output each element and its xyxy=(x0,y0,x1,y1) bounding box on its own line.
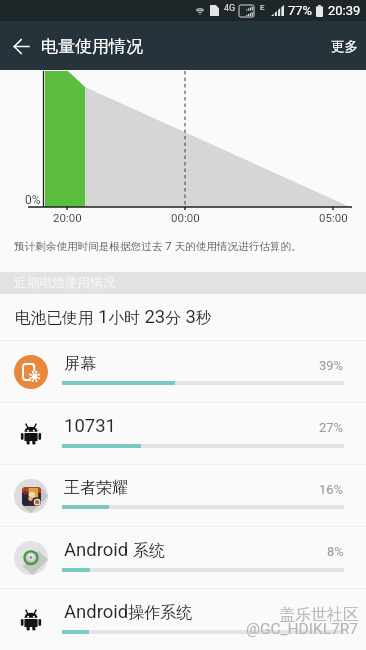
staticText: 4G xyxy=(224,3,236,14)
staticText: Android 系统 xyxy=(64,539,165,561)
staticText: 屏幕 xyxy=(64,354,96,374)
staticText: 16% xyxy=(319,482,344,497)
staticText: 电池已使用 1小时 23分 3秒 xyxy=(15,306,212,328)
button[interactable]: 更多 xyxy=(315,25,366,66)
button[interactable]: 10731 xyxy=(0,403,366,464)
staticText: 39% xyxy=(319,358,344,373)
staticText: 20:39 xyxy=(328,3,361,18)
staticText: Android操作系统 xyxy=(64,601,193,623)
button[interactable]: Android操作系统 xyxy=(0,589,366,650)
staticText: E xyxy=(260,3,265,12)
staticText: 0% xyxy=(25,193,41,207)
staticText: 10731 xyxy=(64,415,116,437)
staticText: 盖乐世社区 xyxy=(279,605,359,625)
staticText: 更多 xyxy=(331,38,359,55)
staticText: @GC_HDIKL7R7 xyxy=(246,620,359,638)
staticText: 近期电池使用情况 xyxy=(14,275,116,291)
staticText: 20:00 xyxy=(53,211,82,224)
staticText: 05:00 xyxy=(319,211,348,224)
staticText: 8% xyxy=(327,544,344,559)
button[interactable]: 王者荣耀 xyxy=(0,465,366,526)
staticText: 预计剩余使用时间是根据您过去 7 天的使用情况进行估算的。 xyxy=(14,239,302,253)
staticText: 27% xyxy=(319,420,344,435)
staticText: 电量使用情况 xyxy=(41,36,143,57)
staticText: 王者荣耀 xyxy=(64,478,128,498)
button[interactable]: 屏幕 xyxy=(0,341,366,402)
staticText: 00:00 xyxy=(171,211,200,224)
staticText: 77% xyxy=(288,3,313,18)
button[interactable]: Android 系统 xyxy=(0,527,366,588)
button[interactable]: Back xyxy=(0,25,42,67)
